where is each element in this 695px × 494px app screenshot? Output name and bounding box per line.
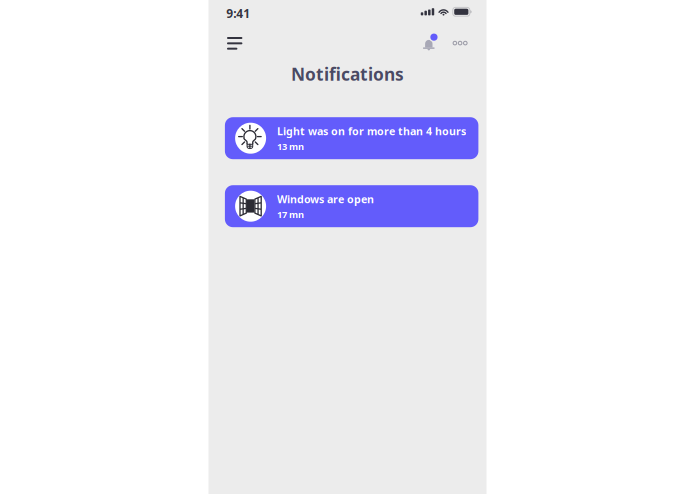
staticText: Windows are open bbox=[277, 192, 374, 206]
button[interactable]: Windows are open bbox=[225, 185, 478, 227]
button[interactable]: Notifications bbox=[417, 30, 444, 56]
button[interactable]: Light was on for more than 4 hours bbox=[225, 117, 478, 159]
staticText: 13 mn bbox=[277, 140, 304, 152]
button[interactable]: Menu bbox=[222, 32, 247, 55]
staticText: Notifications bbox=[291, 62, 404, 85]
staticText: 9:41 bbox=[226, 5, 250, 21]
staticText: Light was on for more than 4 hours bbox=[277, 124, 466, 138]
staticText: 17 mn bbox=[277, 208, 304, 220]
button[interactable]: More options bbox=[447, 35, 473, 51]
